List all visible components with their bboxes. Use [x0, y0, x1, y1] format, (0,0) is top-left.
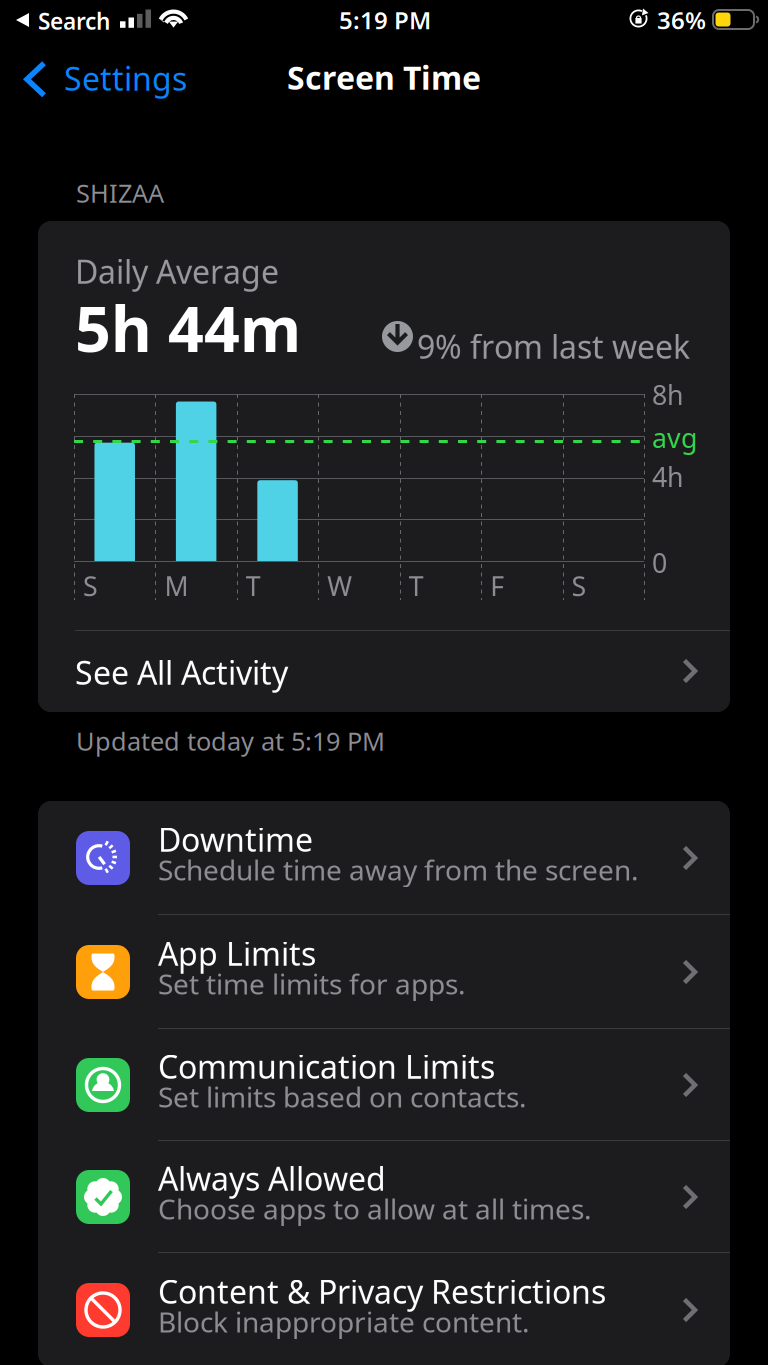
button[interactable]: Communication Limits [38, 1029, 730, 1141]
staticText: App Limits [158, 932, 316, 974]
staticText: Search [38, 6, 110, 36]
staticText: Daily Average [75, 250, 279, 292]
staticText: 9% from last week [417, 325, 690, 367]
staticText: Schedule time away from the screen. [158, 851, 639, 888]
staticText: Screen Time [287, 56, 481, 98]
staticText: S [572, 568, 587, 604]
staticText: Updated today at 5:19 PM [76, 724, 385, 758]
staticText: 36% [657, 4, 706, 36]
button[interactable]: App Limits [38, 915, 730, 1029]
button[interactable]: Downtime [38, 801, 730, 915]
staticText: Choose apps to allow at all times. [158, 1190, 592, 1227]
staticText: 5h 44m [75, 286, 301, 369]
staticText: Set limits based on contacts. [158, 1078, 527, 1115]
staticText: T [409, 568, 424, 604]
button[interactable]: Settings [0, 51, 203, 107]
staticText: 4h [652, 459, 683, 494]
staticText: Downtime [158, 818, 313, 860]
staticText: 0 [652, 545, 667, 580]
staticText: Set time limits for apps. [158, 965, 466, 1002]
button[interactable]: See All Activity [38, 631, 730, 712]
staticText: SHIZAA [76, 176, 164, 210]
staticText: 8h [652, 377, 683, 412]
button[interactable]: Content & Privacy Restrictions [38, 1253, 730, 1365]
staticText: See All Activity [75, 651, 288, 693]
button[interactable]: Always Allowed [38, 1141, 730, 1253]
staticText: W [327, 568, 352, 604]
staticText: S [83, 568, 98, 604]
staticText: T [246, 568, 261, 604]
staticText: M [164, 568, 188, 604]
staticText: Settings [64, 57, 187, 99]
staticText: F [490, 568, 504, 604]
staticText: Content & Privacy Restrictions [158, 1270, 606, 1312]
staticText: 5:19 PM [339, 4, 431, 36]
staticText: Always Allowed [158, 1157, 386, 1199]
staticText: avg [652, 420, 697, 455]
staticText: Communication Limits [158, 1045, 495, 1087]
staticText: Block inappropriate content. [158, 1303, 530, 1340]
